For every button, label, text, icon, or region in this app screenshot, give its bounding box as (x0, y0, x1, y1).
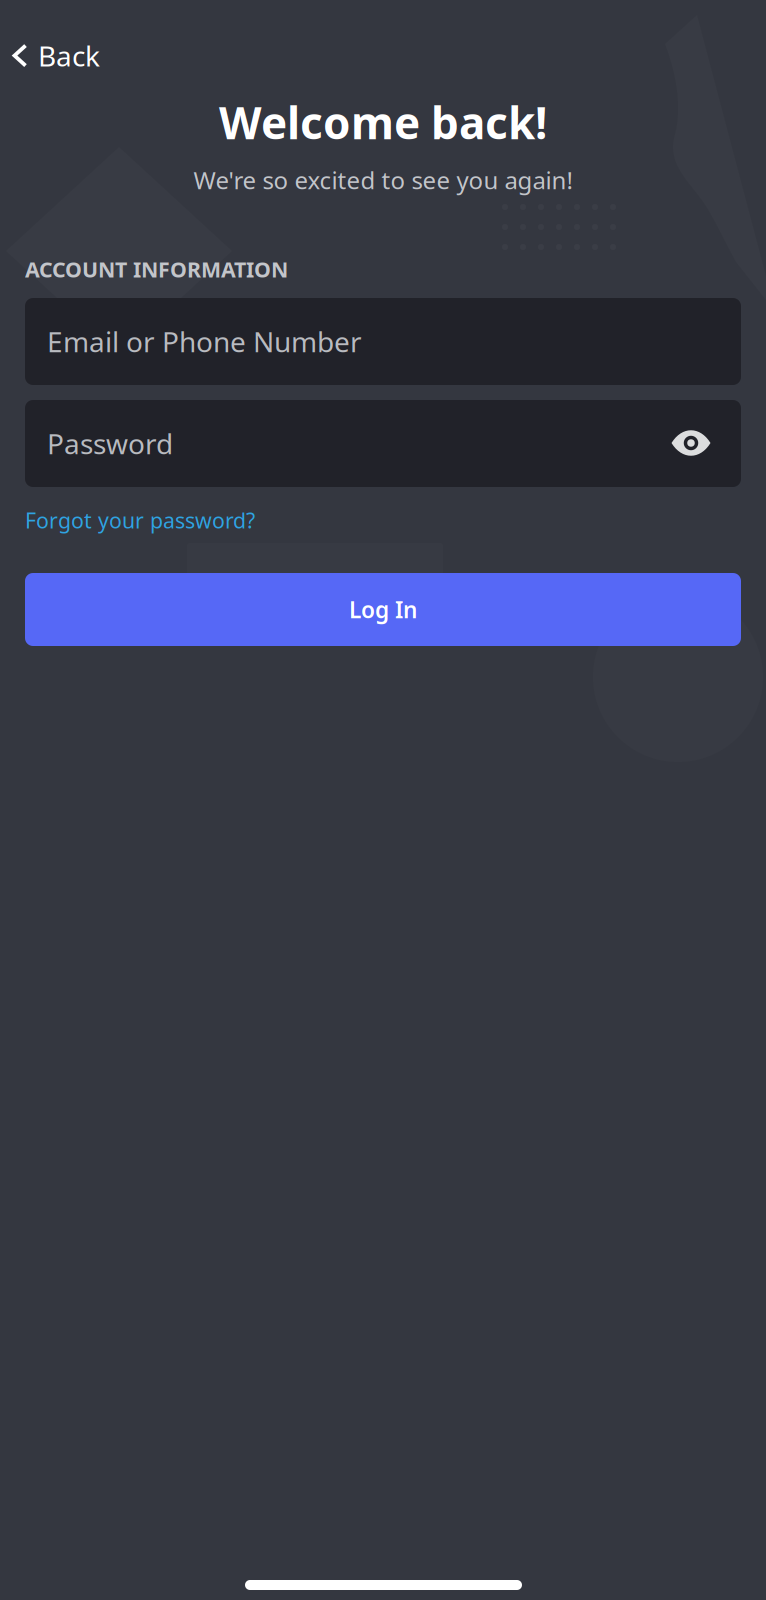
staticText: Welcome back! (219, 93, 547, 151)
button[interactable]: Log In (25, 573, 741, 646)
staticText: We're so excited to see you again! (193, 164, 572, 196)
button[interactable]: Email or Phone Number (25, 298, 741, 385)
staticText: Back (38, 37, 100, 74)
button[interactable]: Back (0, 25, 118, 86)
button[interactable]: Forgot your password? (25, 500, 265, 540)
staticText: Log In (349, 594, 417, 624)
button[interactable]: Show password (657, 409, 725, 477)
staticText: Password (47, 425, 173, 462)
staticText: Email or Phone Number (47, 323, 362, 360)
staticText: ACCOUNT INFORMATION (25, 255, 288, 283)
staticText: Forgot your password? (25, 506, 255, 534)
button[interactable]: Password (25, 400, 741, 487)
